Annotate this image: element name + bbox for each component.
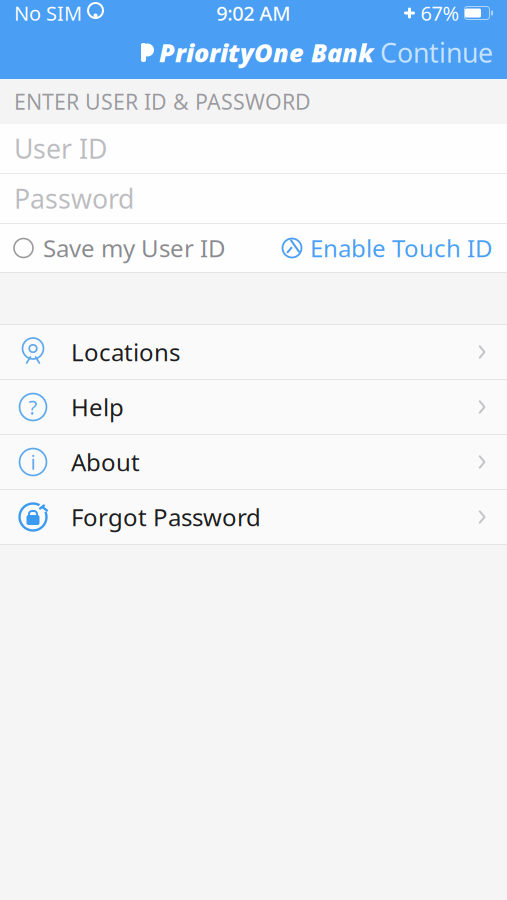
staticText: Password: [14, 181, 134, 216]
button[interactable]: Save my User ID: [14, 226, 226, 270]
staticText: PriorityOne Bank: [159, 36, 374, 69]
button[interactable]: Forgot Password: [0, 490, 507, 545]
staticText: ?: [28, 394, 37, 420]
staticText: Continue: [380, 35, 493, 70]
staticText: Locations: [71, 336, 180, 368]
button[interactable]: Locations: [0, 324, 507, 380]
staticText: No SIM: [14, 0, 82, 26]
staticText: Enable Touch ID: [310, 232, 493, 264]
staticText: 9:02 AM: [216, 0, 290, 26]
staticText: Help: [71, 391, 124, 423]
staticText: i: [30, 449, 35, 475]
button[interactable]: Continue: [366, 27, 507, 78]
staticText: Forgot Password: [71, 501, 261, 533]
button[interactable]: Enable Touch ID: [281, 226, 493, 270]
button[interactable]: ?: [0, 380, 507, 435]
staticText: Save my User ID: [43, 232, 226, 264]
staticText: User ID: [14, 131, 107, 166]
staticText: 67%: [420, 0, 459, 26]
staticText: ENTER USER ID & PASSWORD: [14, 87, 311, 116]
staticText: About: [71, 446, 140, 478]
button[interactable]: i: [0, 435, 507, 490]
